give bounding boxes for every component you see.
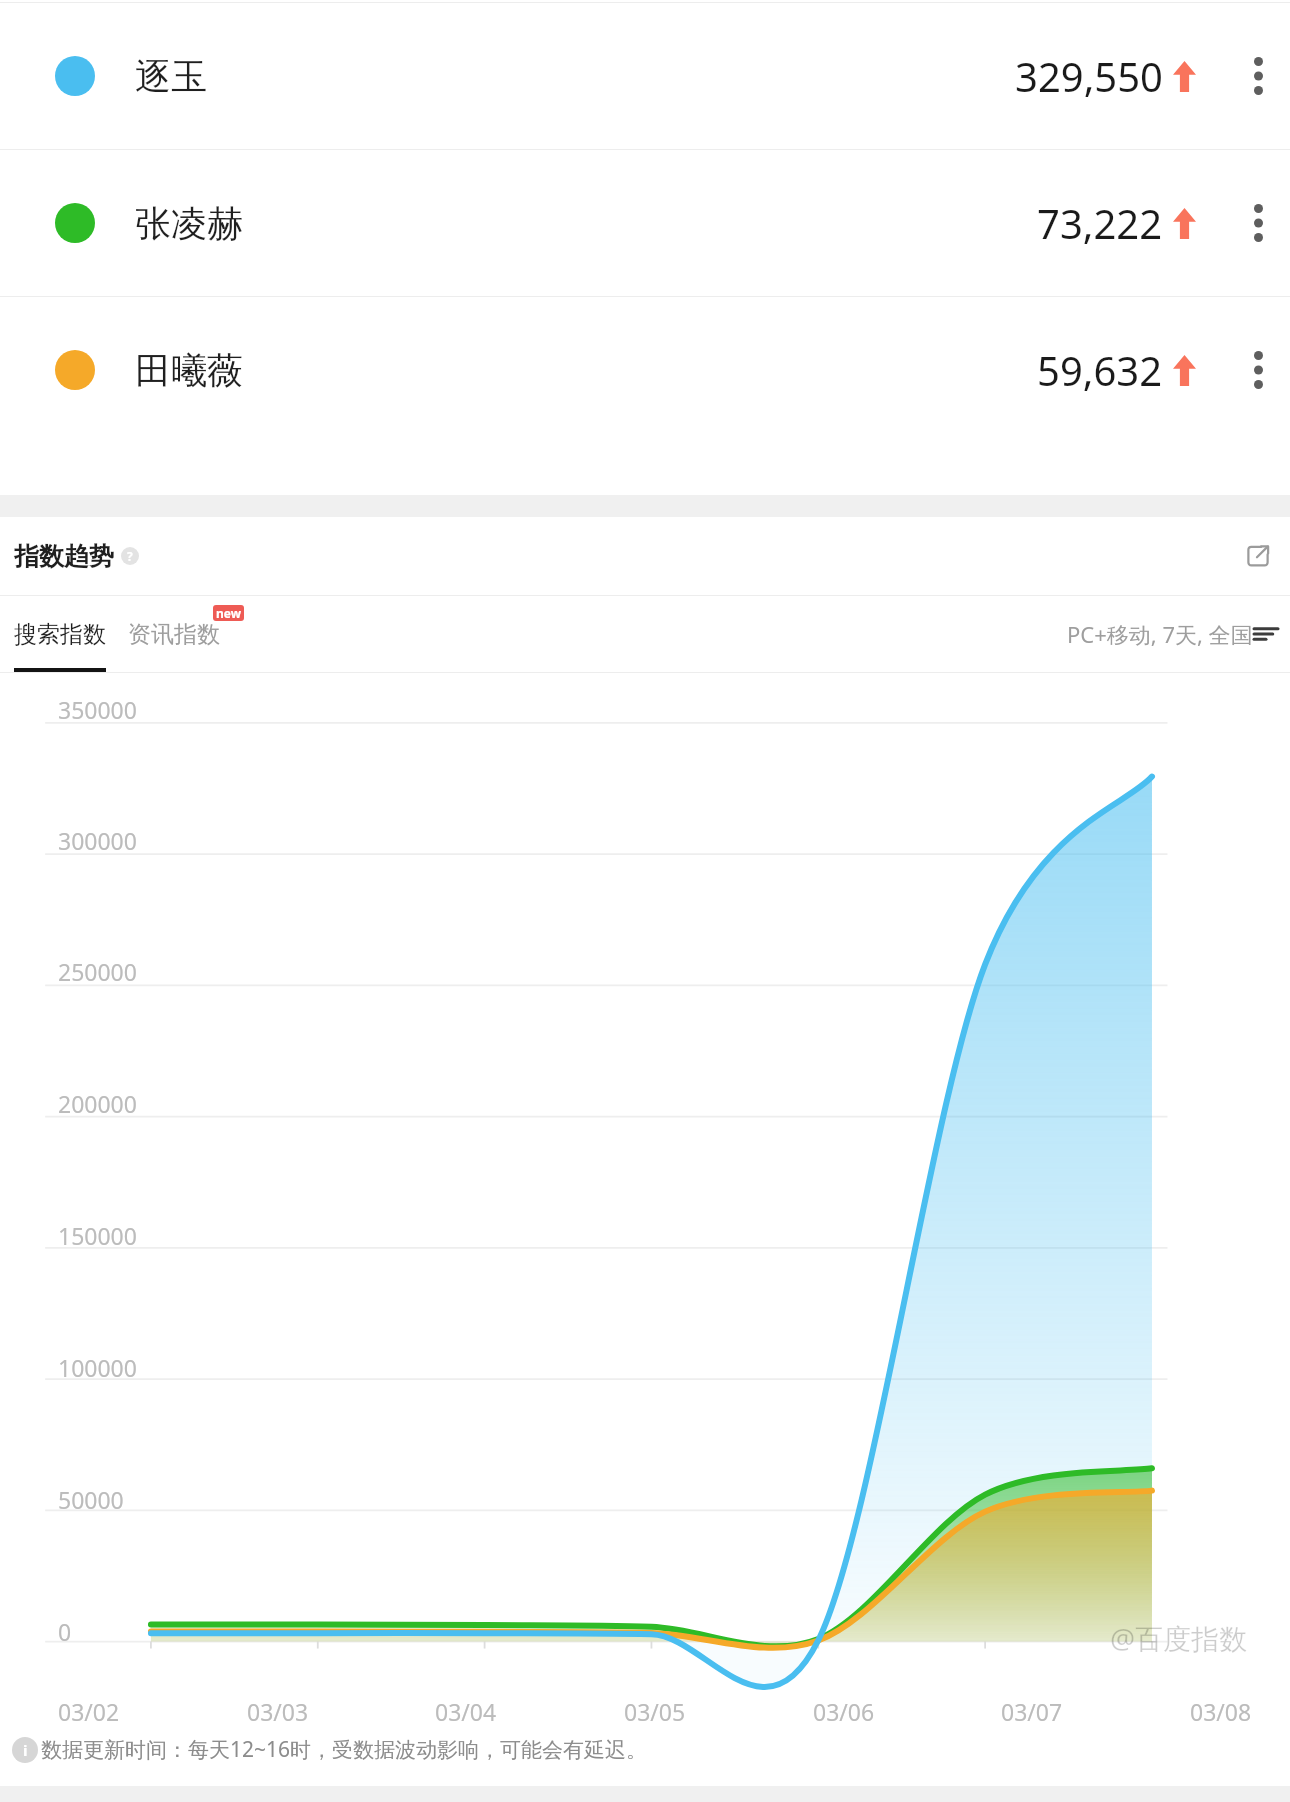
staticText: 350000 [58,694,137,725]
staticText: ? [127,548,133,564]
button[interactable]: 资讯指数 [128,620,220,649]
staticText: 搜索指数 [14,620,106,649]
staticText: 250000 [58,956,137,987]
button[interactable]: More options [1234,52,1282,100]
staticText: PC+移动, 7天, 全国 [1067,619,1253,649]
staticText: 03/04 [435,1696,497,1727]
staticText: 150000 [58,1220,137,1251]
staticText: 张凌赫 [135,201,243,246]
staticText: 100000 [58,1352,137,1383]
staticText: 59,632 [1037,343,1163,397]
staticText: 03/02 [58,1696,120,1727]
staticText: 03/07 [1001,1696,1063,1727]
staticText: new [216,605,241,621]
staticText: 03/08 [1190,1696,1252,1727]
button[interactable]: PC+移动, 7天, 全国 [1067,619,1278,649]
staticText: 03/05 [624,1696,686,1727]
button[interactable]: 逐玉 [0,3,1290,149]
button[interactable]: 张凌赫 [0,150,1290,296]
staticText: i [23,1740,28,1760]
button[interactable]: 搜索指数 [14,614,106,655]
button[interactable]: Help [121,547,139,565]
button[interactable]: 指数趋势 [0,517,1290,595]
staticText: @百度指数 [1110,1619,1248,1657]
staticText: 逐玉 [135,54,207,99]
staticText: 数据更新时间：每天12~16时，受数据波动影响，可能会有延迟。 [41,1735,648,1764]
button[interactable]: More options [1234,346,1282,394]
staticText: 73,222 [1037,196,1163,250]
staticText: 0 [58,1616,72,1647]
staticText: 300000 [58,825,137,856]
staticText: 03/03 [247,1696,309,1727]
staticText: 50000 [58,1484,124,1515]
button[interactable]: Open in new window [1238,536,1278,576]
staticText: 200000 [58,1088,137,1119]
staticText: 329,550 [1015,49,1163,103]
staticText: 03/06 [813,1696,875,1727]
staticText: 田曦薇 [135,348,243,393]
button[interactable]: 田曦薇 [0,297,1290,443]
staticText: 指数趋势 [14,541,114,572]
staticText: 资讯指数 [128,620,220,649]
button[interactable]: More options [1234,199,1282,247]
